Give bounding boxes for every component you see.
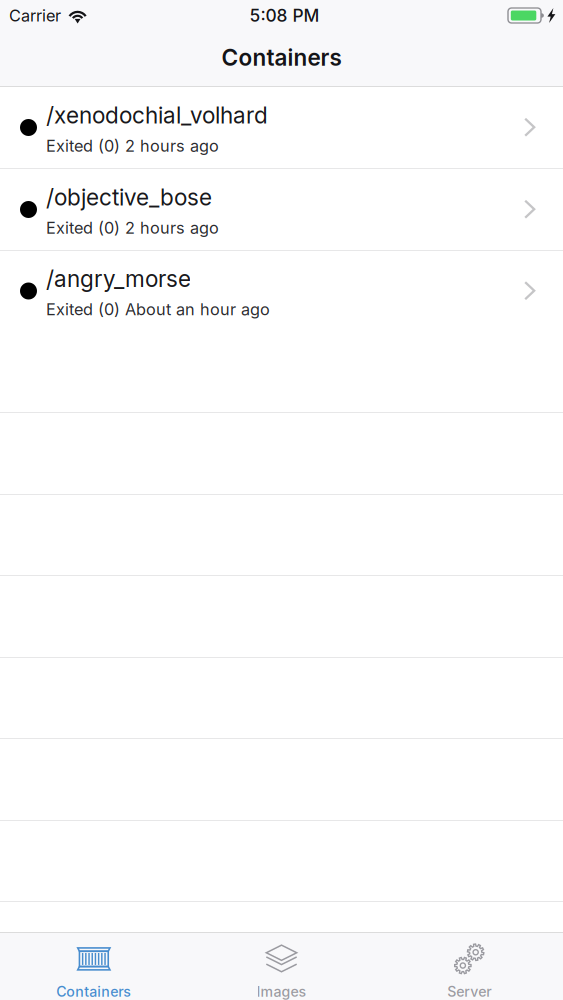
button[interactable]: /xenodochial_volhard (0, 87, 563, 169)
button[interactable]: Containers (0, 933, 188, 1000)
staticText: /angry_morse (46, 265, 191, 292)
staticText: Images (256, 983, 306, 1000)
staticText: Server (447, 983, 491, 1000)
staticText: /xenodochial_volhard (46, 101, 268, 129)
staticText: Exited (0) 2 hours ago (46, 136, 219, 156)
staticText: /objective_bose (46, 183, 212, 211)
button[interactable]: Server (375, 933, 563, 1000)
staticText: Carrier (9, 6, 61, 25)
staticText: Containers (221, 44, 341, 71)
button[interactable]: /objective_bose (0, 169, 563, 251)
button[interactable]: Images (188, 933, 375, 1000)
staticText: 5:08 PM (249, 5, 319, 26)
button[interactable]: /angry_morse (0, 251, 563, 331)
staticText: Exited (0) 2 hours ago (46, 218, 219, 238)
staticText: Containers (56, 983, 131, 1000)
staticText: Exited (0) About an hour ago (46, 299, 270, 319)
